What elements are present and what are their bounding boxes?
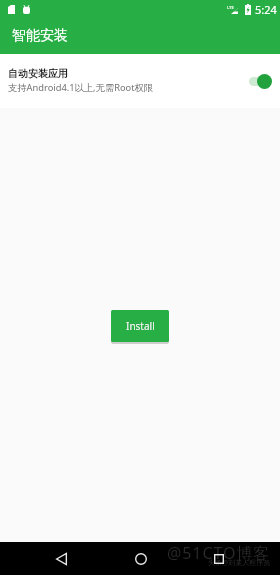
button[interactable]: Back (46, 543, 77, 574)
staticText: 自动安装应用 (8, 67, 68, 80)
staticText: 5:24 (255, 2, 277, 17)
button[interactable]: 自动安装应用 (0, 54, 280, 108)
button[interactable]: Auto install toggle (242, 72, 272, 90)
staticText: LTE (227, 5, 234, 11)
staticText: 支持Android4.1以上,无需Root权限 (8, 81, 154, 94)
staticText: @51CTO博客 (167, 542, 271, 564)
staticText: Install (126, 319, 155, 333)
button[interactable]: Home (125, 543, 156, 574)
button[interactable]: Install (111, 310, 169, 342)
staticText: 智能安装 (12, 27, 68, 45)
staticText: 头条@刘某人程序员 (208, 558, 271, 568)
button[interactable]: Recent apps (203, 543, 234, 574)
